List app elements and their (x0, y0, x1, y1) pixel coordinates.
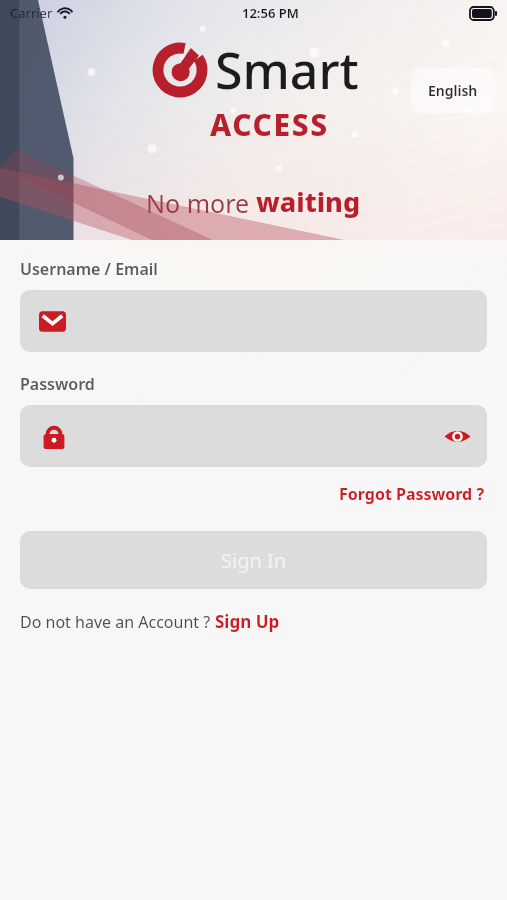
button[interactable]: English (411, 68, 495, 113)
staticText: waiting (256, 183, 361, 220)
button[interactable]: Show password (20, 405, 487, 467)
staticText: No more (146, 186, 256, 220)
staticText: Do not have an Account ? (20, 611, 215, 633)
staticText: Smart (215, 36, 359, 104)
staticText: Password (20, 373, 95, 395)
staticText: Forgot Password ? (339, 483, 485, 505)
staticText: Sign In (221, 547, 287, 574)
staticText: English (428, 81, 478, 100)
staticText: ACCESS (210, 104, 329, 145)
button[interactable]: Do not have an Account ? (20, 610, 280, 633)
button[interactable]: Show password (428, 409, 487, 464)
button[interactable] (20, 290, 487, 352)
staticText: Carrier (10, 4, 53, 22)
staticText: Sign Up (215, 610, 280, 633)
staticText: 12:56 PM (242, 4, 299, 22)
staticText: Username / Email (20, 258, 158, 280)
button[interactable]: Forgot Password ? (337, 481, 487, 507)
